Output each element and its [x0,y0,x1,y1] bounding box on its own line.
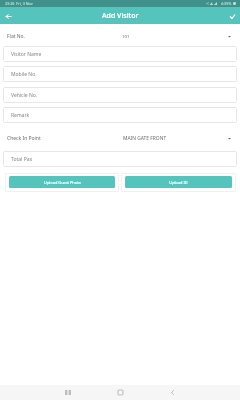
button[interactable]: Flat No. [0,31,240,41]
button[interactable]: Visitor Name [3,46,237,62]
button[interactable]: Back [165,385,180,400]
staticText: Remark [11,112,30,119]
staticText: Vehicle No. [11,92,38,99]
staticText: Add Visitor [102,11,139,21]
button[interactable]: Upload ID [125,176,232,188]
staticText: 4:35% [221,1,232,6]
staticText: Flat No. [7,33,25,40]
button[interactable]: Save [224,8,240,24]
staticText: 23:26 Fri, 3 Nov [5,1,33,6]
staticText: Check In Point [7,135,41,142]
staticText: Total Pax [11,156,33,163]
button[interactable]: Recents [60,385,75,400]
staticText: Visitor Name [11,51,42,58]
staticText: Upload ID [169,180,188,185]
button[interactable]: Home [113,385,128,400]
button[interactable]: Back [0,8,16,24]
button[interactable]: Total Pax [3,151,237,167]
staticText: MAIN GATE FRONT [123,135,167,142]
staticText: Upload Guest Photo [44,180,81,185]
button[interactable]: Upload Guest Photo [9,176,115,188]
staticText: Mobile No. [11,71,37,78]
button[interactable]: Check In Point [0,133,240,143]
button[interactable]: Remark [3,107,237,123]
button[interactable]: Vehicle No. [3,87,237,103]
staticText: 101 [122,33,130,39]
button[interactable]: Mobile No. [3,66,237,82]
